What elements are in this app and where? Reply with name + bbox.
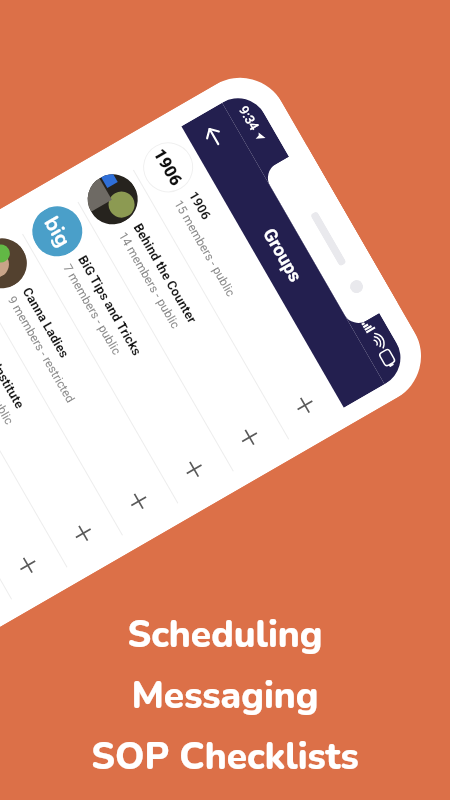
staticText: Groups [259, 224, 307, 286]
button[interactable]: big [15, 190, 233, 504]
staticText: Scheduling [127, 610, 323, 660]
button[interactable]: Back [193, 116, 234, 157]
staticText: big [37, 211, 77, 253]
button[interactable]: Add to group [9, 545, 47, 584]
staticText: Behind the Counter [131, 221, 200, 326]
button[interactable]: Add to group [120, 481, 158, 520]
button[interactable]: Growers Circle [0, 286, 67, 600]
staticText: 1906 [186, 189, 214, 222]
staticText: 9 members - restricted [5, 294, 78, 406]
button[interactable]: Add to group [64, 513, 102, 552]
button[interactable]: Canna Ladies [0, 222, 178, 536]
staticText: 14 members - public [116, 230, 182, 331]
staticText: 7 members - public [60, 262, 124, 357]
button[interactable]: Add to group [175, 449, 213, 488]
button[interactable]: Industry Institute [0, 254, 122, 568]
button[interactable]: Compliance Corner [0, 318, 11, 632]
button[interactable]: Add to group [286, 385, 324, 424]
button[interactable]: Behind the Counter [70, 158, 288, 472]
staticText: 12 members - public [0, 326, 16, 427]
staticText: 9:34 [236, 103, 262, 133]
staticText: Canna Ladies [20, 285, 72, 361]
staticText: Messaging [131, 671, 319, 721]
staticText: 1906 [149, 145, 187, 190]
button[interactable]: Add to group [231, 417, 269, 456]
staticText: SOP Checklists [91, 732, 359, 782]
staticText: BiG Tips and Tricks [75, 253, 145, 358]
button[interactable]: 1906 [126, 126, 344, 440]
staticText: Industry Institute [0, 317, 28, 412]
staticText: 15 members - public [171, 198, 238, 299]
